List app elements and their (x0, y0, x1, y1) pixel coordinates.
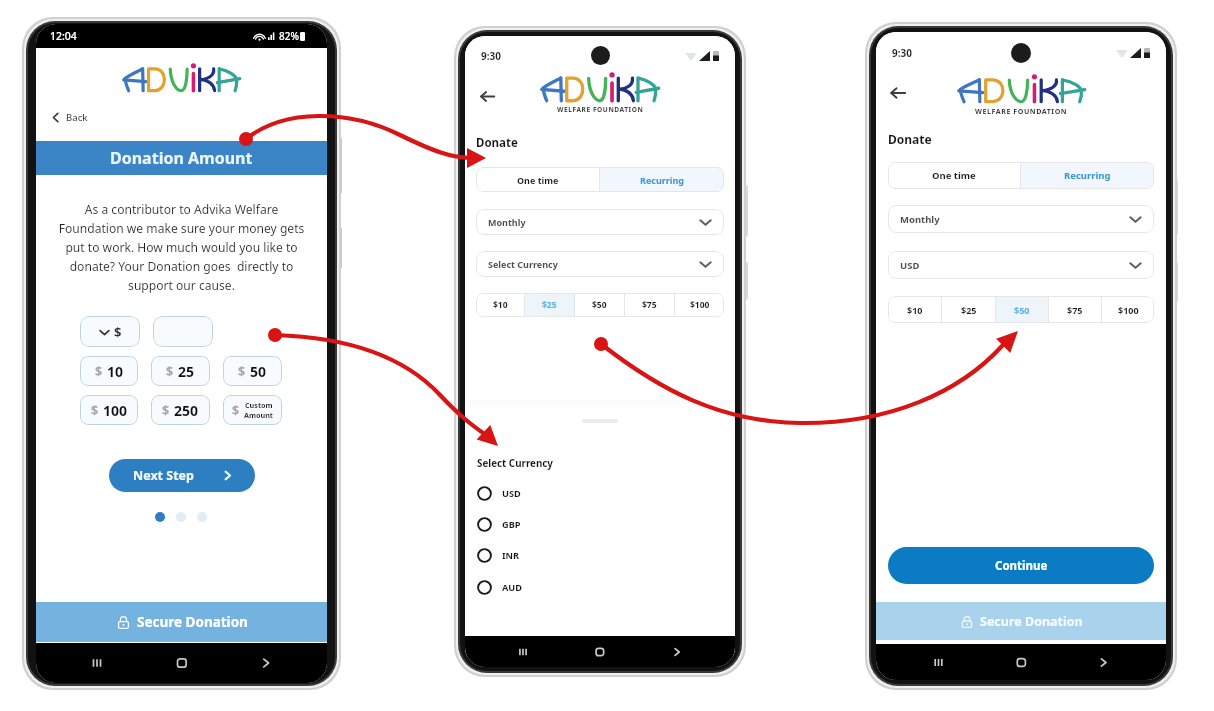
staticText: Donate (476, 135, 518, 151)
button[interactable]: Monthly (476, 209, 724, 235)
button[interactable]: Secure Donation (36, 602, 327, 642)
staticText: Continue (995, 558, 1048, 574)
button[interactable]: $75 (1049, 296, 1101, 323)
button[interactable]: USD (888, 251, 1154, 279)
staticText: $100 (690, 299, 710, 311)
button[interactable]: AUD (477, 579, 523, 596)
staticText: $ (232, 402, 240, 419)
button[interactable]: $25 (525, 293, 574, 317)
button[interactable]: $25 (942, 296, 995, 323)
button[interactable]: $100 (675, 293, 724, 317)
staticText: $10 (493, 299, 508, 311)
staticText: 9:30 (481, 49, 501, 63)
staticText: Amount (244, 410, 273, 420)
button[interactable]: Select Currency (476, 251, 724, 277)
staticText: Select Currency (488, 258, 558, 270)
staticText: WELFARE FOUNDATION (557, 105, 644, 114)
staticText: Secure Donation (137, 613, 248, 631)
staticText: One time (932, 169, 976, 182)
staticText: $25 (542, 299, 557, 311)
staticText: 9:30 (892, 46, 912, 60)
staticText: $75 (642, 299, 657, 311)
staticText: $ (95, 363, 103, 380)
staticText: $ (162, 402, 170, 419)
staticText: Recurring (1064, 169, 1111, 182)
button[interactable]: Back (474, 83, 500, 109)
staticText: Custom (245, 400, 273, 410)
staticText: $ (166, 363, 174, 380)
staticText: $100 (1118, 304, 1139, 316)
staticText: One time (517, 174, 559, 186)
button[interactable]: $50 (996, 296, 1048, 323)
button[interactable]: USD (477, 485, 521, 502)
button[interactable]: Secure Donation (876, 602, 1166, 640)
staticText: $50 (1014, 304, 1030, 316)
staticText: Secure Donation (980, 613, 1083, 630)
button[interactable]: GBP (477, 516, 521, 533)
button[interactable]: $ (80, 395, 138, 425)
staticText: GBP (502, 518, 521, 531)
button[interactable]: $ (151, 356, 210, 386)
staticText: INR (502, 549, 520, 562)
staticText: As a contributor to Advika Welfare Found… (46, 201, 317, 294)
staticText: 82% (279, 29, 299, 43)
button[interactable]: Next Step (109, 459, 255, 492)
button[interactable]: INR (477, 547, 520, 564)
staticText: $10 (907, 304, 923, 316)
button[interactable]: $10 (888, 296, 941, 323)
staticText: Select Currency (477, 457, 553, 470)
staticText: 250 (174, 401, 199, 420)
button[interactable]: $ (80, 316, 140, 347)
staticText: 12:04 (50, 29, 77, 43)
staticText: Monthly (488, 216, 526, 228)
button[interactable]: Recurring (600, 167, 724, 192)
button[interactable]: $100 (1102, 296, 1154, 323)
staticText: 100 (103, 401, 128, 420)
staticText: USD (502, 487, 521, 500)
button[interactable]: $ (223, 395, 282, 425)
button[interactable]: Back (49, 109, 88, 125)
staticText: Monthly (900, 213, 940, 226)
staticText: Donate (888, 131, 932, 147)
button[interactable]: Monthly (888, 205, 1154, 233)
staticText: Recurring (640, 174, 685, 186)
staticText: 25 (178, 362, 195, 381)
staticText: $ (91, 402, 99, 419)
button[interactable]: One time (888, 162, 1020, 189)
staticText: $75 (1067, 304, 1083, 316)
button[interactable]: $ (223, 356, 282, 386)
button[interactable]: Continue (888, 547, 1154, 584)
button[interactable] (153, 316, 213, 347)
staticText: $25 (961, 304, 977, 316)
staticText: $50 (592, 299, 607, 311)
staticText: WELFARE FOUNDATION (975, 106, 1068, 116)
staticText: Next Step (133, 467, 194, 484)
staticText: USD (900, 259, 920, 272)
button[interactable]: $50 (575, 293, 624, 317)
button[interactable]: $ (151, 395, 210, 425)
staticText: Donation Amount (110, 147, 253, 169)
staticText: $ (114, 323, 122, 341)
button[interactable]: $10 (476, 293, 524, 317)
staticText: Back (66, 111, 88, 124)
staticText: $ (238, 363, 246, 380)
button[interactable]: Back (885, 80, 911, 106)
staticText: 10 (107, 362, 124, 381)
staticText: 50 (250, 362, 267, 381)
button[interactable]: $ (80, 356, 138, 386)
staticText: AUD (502, 581, 523, 594)
button[interactable]: Recurring (1021, 162, 1154, 189)
button[interactable]: $75 (625, 293, 674, 317)
button[interactable]: One time (476, 167, 599, 192)
